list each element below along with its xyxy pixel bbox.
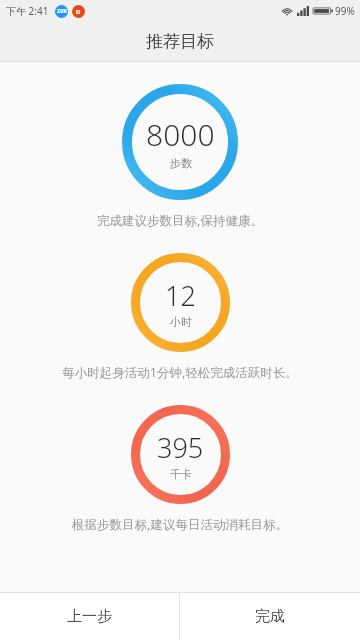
staticText: 每小时起身活动1分钟,轻松完成活跃时长。 (62, 364, 298, 381)
staticText: 12 (165, 277, 196, 314)
staticText: 8000 (146, 114, 215, 155)
staticText: 千卡 (170, 467, 192, 481)
staticText: 推荐目标 (146, 31, 214, 52)
staticText: 步数 (170, 156, 192, 170)
staticText: ZUK (57, 8, 67, 15)
staticText: 完成建议步数目标,保持健康。 (97, 212, 263, 229)
staticText: 99% (335, 4, 355, 18)
button[interactable]: 完成 (180, 593, 360, 640)
staticText: 395 (157, 429, 204, 466)
staticText: 上一步 (67, 607, 112, 626)
button[interactable]: 上一步 (0, 593, 179, 640)
staticText: 根据步数目标,建议每日活动消耗目标。 (72, 516, 288, 533)
staticText: 下午 2:41 (6, 4, 49, 18)
staticText: 小时 (170, 315, 192, 329)
staticText: D (76, 8, 81, 16)
staticText: 完成 (255, 607, 285, 626)
